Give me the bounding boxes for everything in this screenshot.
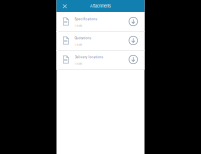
button[interactable]: Close (56, 0, 72, 12)
staticText: Delivery locations (74, 55, 103, 59)
staticText: 1.8 MB (74, 24, 82, 27)
button[interactable]: Quotations (56, 31, 144, 50)
staticText: 1.8 MB (74, 43, 82, 46)
button[interactable]: Specifications (56, 12, 144, 31)
staticText: Attachments (90, 4, 111, 8)
button[interactable]: Delivery locations (56, 50, 144, 69)
staticText: Quotations (74, 36, 91, 40)
staticText: 1.8 MB (74, 62, 82, 65)
staticText: Specifications (74, 17, 97, 21)
